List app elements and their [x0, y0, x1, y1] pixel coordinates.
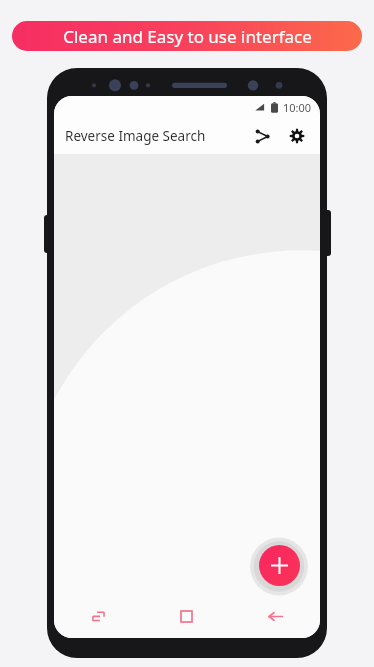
- button[interactable]: Add: [259, 545, 300, 586]
- button[interactable]: Recents: [54, 594, 142, 638]
- button[interactable]: Share: [247, 121, 277, 151]
- button[interactable]: Back: [231, 594, 320, 638]
- button[interactable]: Settings: [282, 121, 312, 151]
- staticText: Clean and Easy to use interface: [63, 25, 312, 48]
- staticText: 10:00: [283, 100, 312, 115]
- staticText: Reverse Image Search: [65, 127, 206, 145]
- button[interactable]: Home: [142, 594, 231, 638]
